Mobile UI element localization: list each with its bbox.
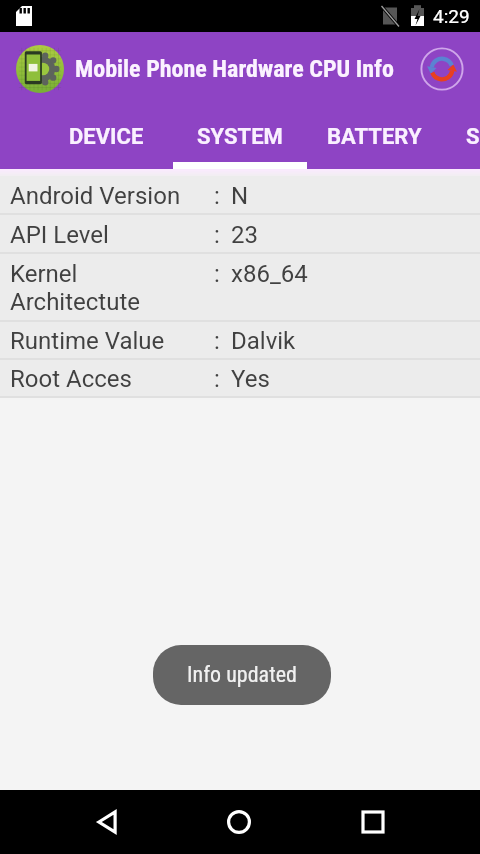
staticText: Yes bbox=[231, 365, 270, 393]
staticText: Root Acces bbox=[10, 365, 206, 393]
button[interactable]: Kernel Architectute bbox=[0, 254, 480, 322]
staticText: : bbox=[214, 260, 220, 288]
button[interactable]: Recent apps bbox=[340, 790, 406, 854]
staticText: SENSOR bbox=[466, 124, 480, 150]
staticText: Mobile Phone Hardware CPU Info bbox=[75, 55, 394, 83]
staticText: N bbox=[231, 182, 249, 210]
staticText: Android Version bbox=[10, 182, 206, 210]
button[interactable]: Android Version bbox=[0, 176, 480, 215]
button[interactable]: Back bbox=[74, 790, 140, 854]
button[interactable]: DEVICE bbox=[39, 105, 173, 169]
staticText: 4:29 bbox=[433, 5, 470, 27]
button[interactable]: Info updated bbox=[153, 645, 331, 705]
staticText: : bbox=[214, 365, 220, 393]
staticText: 23 bbox=[231, 221, 258, 249]
staticText: Info updated bbox=[187, 662, 297, 688]
button[interactable]: Home bbox=[206, 790, 272, 854]
button[interactable]: BATTERY bbox=[307, 105, 441, 169]
button[interactable]: API Level bbox=[0, 215, 480, 254]
staticText: : bbox=[214, 221, 220, 249]
button[interactable]: Refresh bbox=[418, 45, 466, 93]
staticText: DEVICE bbox=[69, 124, 144, 150]
staticText: Dalvik bbox=[231, 327, 296, 355]
staticText: x86_64 bbox=[231, 260, 308, 288]
button[interactable]: SYSTEM bbox=[173, 105, 307, 169]
button[interactable]: Runtime Value bbox=[0, 322, 480, 360]
staticText: SYSTEM bbox=[197, 124, 283, 150]
staticText: : bbox=[214, 182, 220, 210]
staticText: API Level bbox=[10, 221, 206, 249]
button[interactable]: SENSOR bbox=[441, 105, 480, 169]
staticText: : bbox=[214, 327, 220, 355]
staticText: BATTERY bbox=[327, 124, 422, 150]
staticText: Runtime Value bbox=[10, 327, 206, 355]
staticText: Kernel Architectute bbox=[10, 260, 206, 316]
button[interactable]: Root Acces bbox=[0, 360, 480, 398]
